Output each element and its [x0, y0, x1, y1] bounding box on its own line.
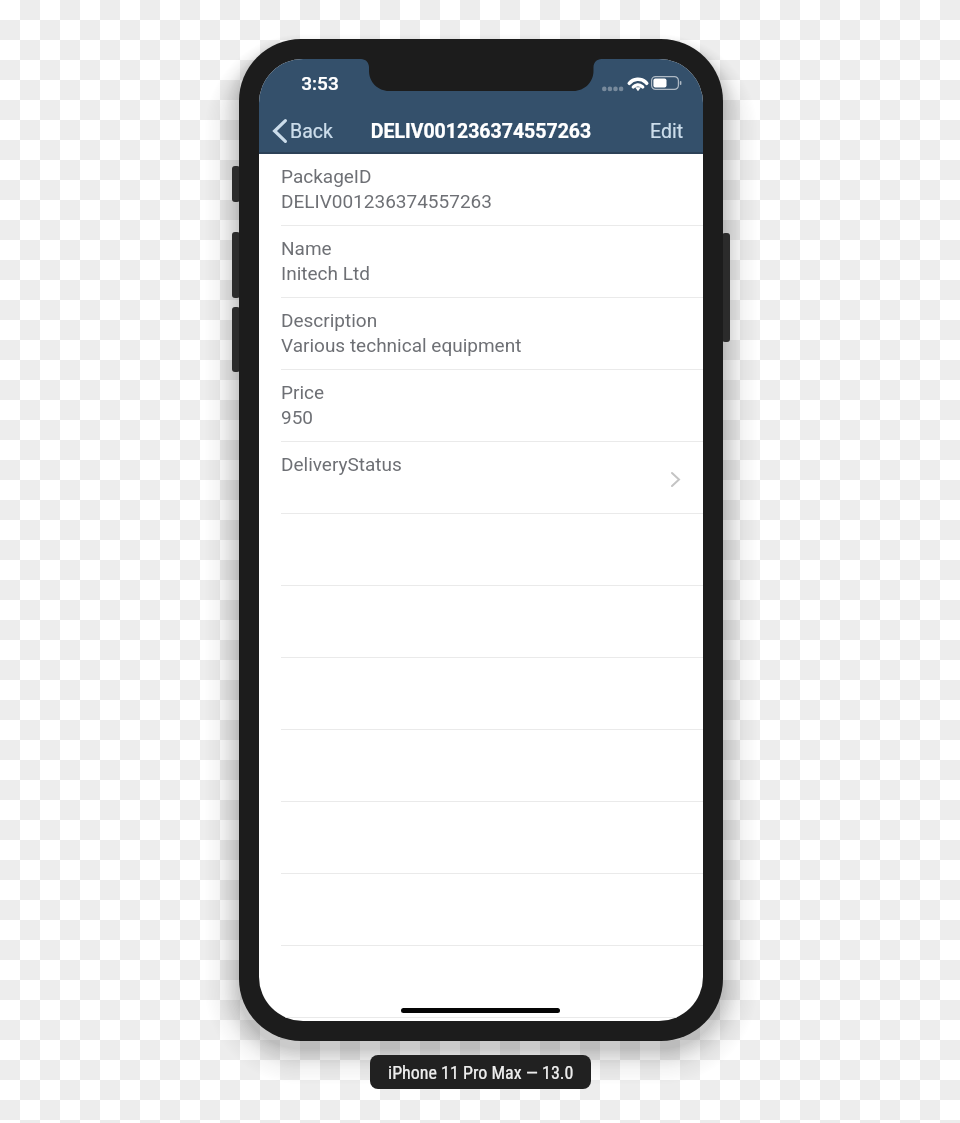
button[interactable]: DeliveryStatus — [259, 442, 703, 514]
staticText: DELIV001236374557263 — [281, 190, 492, 212]
staticText: PackageID — [281, 165, 372, 187]
staticText: DeliveryStatus — [281, 453, 402, 475]
button[interactable]: Price — [259, 370, 703, 442]
button[interactable]: Description — [259, 298, 703, 370]
staticText: 3:53 — [298, 72, 342, 94]
staticText: Description — [281, 309, 378, 331]
staticText: 950 — [281, 406, 314, 428]
button[interactable]: Name — [259, 226, 703, 298]
staticText: Price — [281, 381, 325, 403]
staticText: iPhone 11 Pro Max — 13.0 — [388, 1062, 574, 1083]
staticText: Edit — [650, 120, 684, 143]
staticText: Name — [281, 237, 332, 259]
staticText: Various technical equipment — [281, 334, 522, 356]
button[interactable]: PackageID — [259, 154, 703, 226]
staticText: DELIV001236374557263 — [367, 120, 595, 143]
button[interactable]: Back — [267, 114, 341, 148]
staticText: Initech Ltd — [281, 262, 370, 284]
staticText: Back — [290, 120, 333, 143]
button[interactable]: Edit — [642, 114, 692, 148]
